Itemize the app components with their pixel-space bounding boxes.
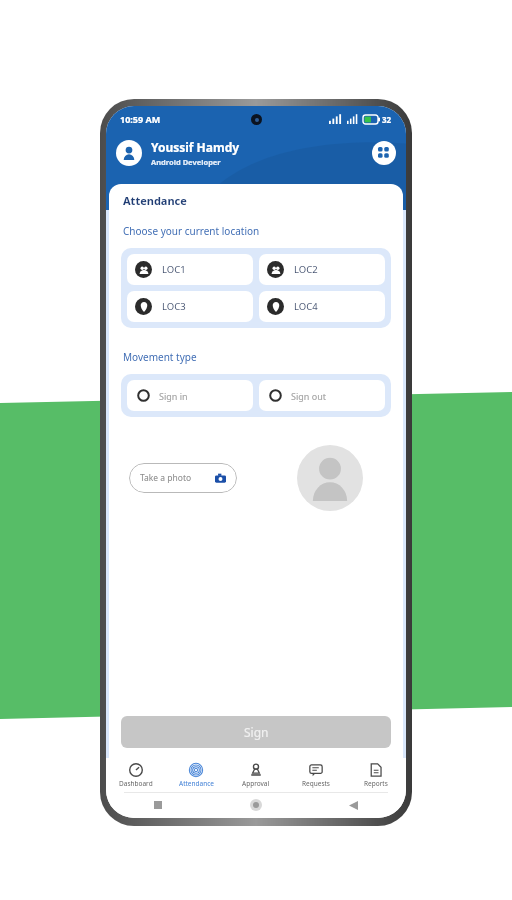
button[interactable]: Requests xyxy=(286,758,346,792)
staticText: Attendance xyxy=(123,193,187,208)
button[interactable]: Sign out xyxy=(259,380,385,411)
button[interactable]: Sign in xyxy=(127,380,253,411)
staticText: Choose your current location xyxy=(123,224,260,238)
staticText: Youssif Hamdy xyxy=(151,139,240,155)
staticText: Movement type xyxy=(123,350,197,364)
staticText: 32 xyxy=(382,114,392,125)
staticText: Sign out xyxy=(291,390,326,402)
button[interactable]: Attendance xyxy=(166,758,226,792)
staticText: Android Developer xyxy=(151,157,221,167)
button[interactable]: LOC1 xyxy=(127,254,253,285)
button[interactable]: Profile xyxy=(116,140,142,166)
staticText: LOC2 xyxy=(294,263,318,276)
staticText: Sign xyxy=(244,724,269,740)
staticText: Take a photo xyxy=(140,472,192,484)
staticText: LOC4 xyxy=(294,300,318,313)
button[interactable]: Dashboard xyxy=(106,758,166,792)
button[interactable]: Home xyxy=(250,799,262,811)
button[interactable]: Take a photo xyxy=(129,463,237,493)
staticText: Approval xyxy=(242,779,270,788)
staticText: Sign in xyxy=(159,390,188,402)
staticText: Requests xyxy=(302,779,330,788)
button[interactable]: LOC3 xyxy=(127,291,253,322)
button[interactable]: Sign xyxy=(121,716,391,748)
staticText: Dashboard xyxy=(119,779,153,788)
button[interactable]: Approval xyxy=(226,758,286,792)
staticText: 10:59 AM xyxy=(120,113,161,125)
staticText: Reports xyxy=(364,779,388,788)
staticText: LOC1 xyxy=(162,263,186,276)
staticText: LOC3 xyxy=(162,300,186,313)
button[interactable]: Apps xyxy=(372,141,396,165)
staticText: Attendance xyxy=(179,779,214,788)
button[interactable]: LOC2 xyxy=(259,254,385,285)
button[interactable]: Back xyxy=(349,801,358,810)
button[interactable]: LOC4 xyxy=(259,291,385,322)
button[interactable]: Reports xyxy=(346,758,406,792)
